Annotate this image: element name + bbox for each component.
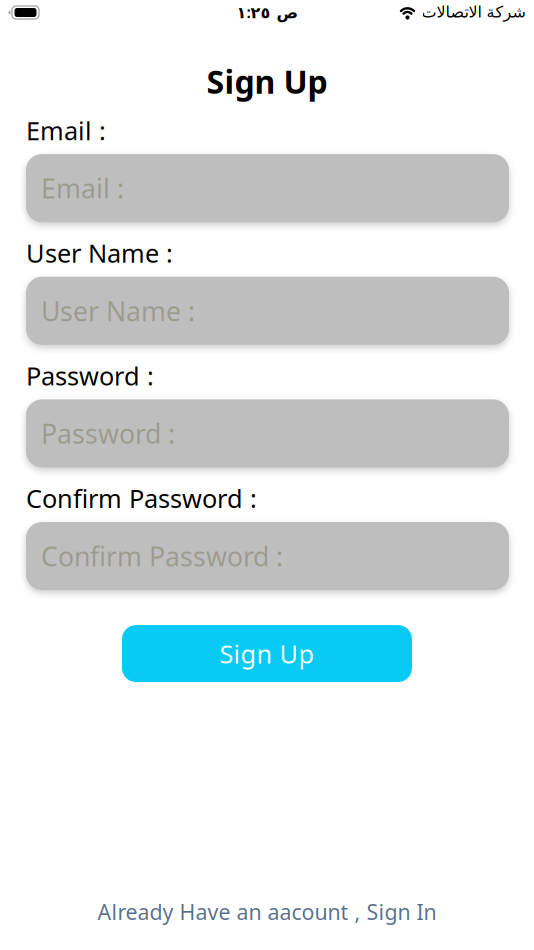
staticText: Password :: [26, 359, 154, 392]
staticText: Confirm Password :: [41, 538, 283, 574]
staticText: User Name :: [26, 236, 173, 270]
staticText: User Name :: [41, 293, 195, 328]
staticText: Email :: [41, 170, 124, 206]
staticText: شركة الاتصالات: [421, 3, 525, 21]
button[interactable]: Already Have an aacount , Sign In: [97, 898, 436, 926]
textField[interactable]: Email :: [41, 170, 494, 206]
staticText: Sign Up: [219, 637, 314, 670]
secureTextField[interactable]: Password :: [41, 416, 494, 451]
staticText: Sign Up: [206, 60, 327, 102]
textField[interactable]: User Name :: [41, 293, 494, 328]
staticText: Password :: [41, 416, 175, 451]
staticText: ص ١:٢٥: [236, 1, 298, 23]
button[interactable]: Sign Up: [122, 625, 412, 682]
staticText: Confirm Password :: [26, 481, 257, 515]
staticText: Email :: [26, 113, 106, 147]
secureTextField[interactable]: Confirm Password :: [41, 538, 494, 574]
staticText: Already Have an aacount , Sign In: [97, 898, 436, 926]
